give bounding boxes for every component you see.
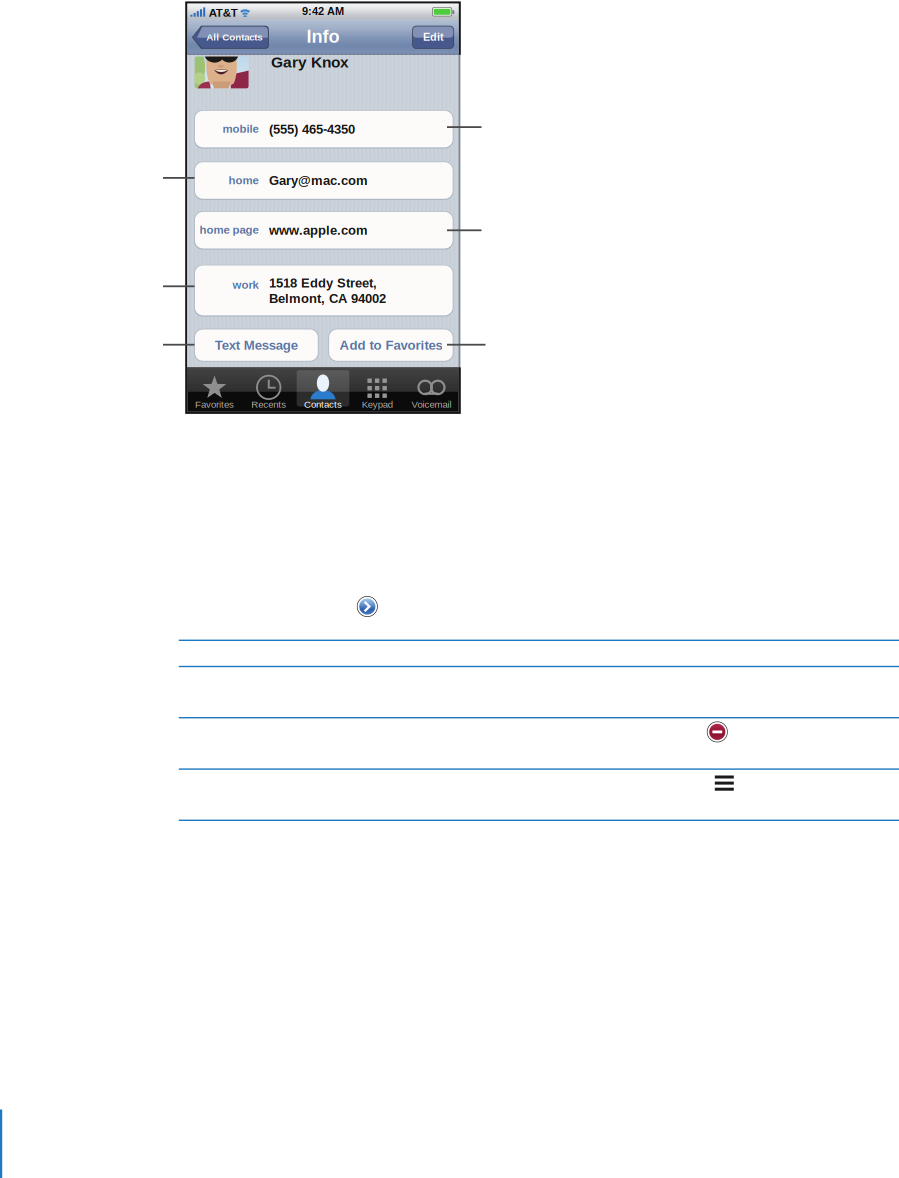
staticText: AT&T [209, 6, 238, 19]
staticText: Keypad [362, 399, 393, 410]
button[interactable]: Recents [242, 367, 296, 412]
button[interactable]: Add to Favorites [328, 329, 453, 361]
button[interactable]: work [194, 265, 453, 316]
staticText: www.apple.com [269, 223, 368, 237]
button[interactable]: Keypad [350, 367, 404, 412]
staticText: Text Message [215, 338, 298, 352]
button[interactable]: All Contacts [192, 26, 269, 49]
button[interactable]: Contacts [296, 367, 350, 412]
button[interactable]: mobile [194, 110, 453, 148]
staticText: mobile [223, 122, 259, 135]
staticText: Gary Knox [271, 53, 349, 71]
staticText: Contacts [304, 399, 342, 410]
button[interactable]: Edit [412, 26, 454, 49]
staticText: home [229, 174, 259, 186]
staticText: Recents [251, 399, 286, 410]
staticText: Edit [423, 31, 444, 43]
staticText: Belmont, CA 94002 [269, 291, 386, 306]
staticText: 1518 Eddy Street, [269, 276, 377, 290]
button[interactable]: Favorites [187, 367, 242, 412]
staticText: All Contacts [206, 31, 262, 42]
staticText: Gary@mac.com [269, 173, 368, 188]
staticText: Favorites [195, 399, 234, 410]
staticText: 9:42 AM [302, 5, 344, 17]
button[interactable]: home [194, 162, 453, 200]
button[interactable]: Text Message [194, 329, 318, 361]
staticText: Voicemail [411, 399, 451, 410]
button[interactable]: Voicemail [404, 367, 459, 412]
staticText: (555) 465-4350 [269, 122, 355, 136]
staticText: Info [306, 26, 339, 47]
staticText: Add to Favorites [339, 338, 442, 352]
staticText: home page [200, 223, 259, 236]
staticText: work [233, 278, 259, 291]
button[interactable]: home page [194, 211, 453, 250]
